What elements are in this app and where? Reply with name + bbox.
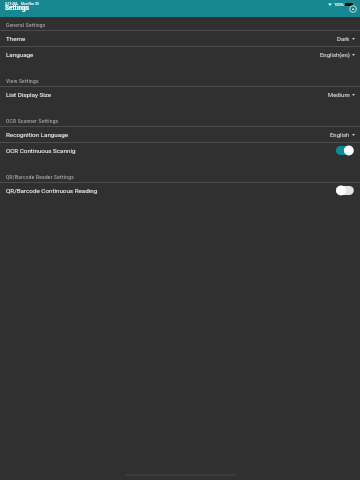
button[interactable]: Language: [0, 47, 360, 62]
button[interactable]: Recognition Language: [0, 127, 360, 142]
staticText: Recognition Language: [6, 131, 69, 138]
staticText: English: [330, 131, 350, 138]
button[interactable]: Accessibility overlay button: [349, 5, 357, 13]
staticText: English(en): [320, 51, 350, 58]
staticText: General Settings: [6, 23, 46, 29]
staticText: QR/Barcode Continuous Reading: [6, 187, 98, 194]
staticText: 3:13 AM: [5, 2, 18, 6]
staticText: View Settings: [6, 79, 39, 85]
staticText: Language: [6, 51, 34, 58]
button[interactable]: Switch on: [336, 145, 354, 156]
button[interactable]: QR/Barcode Continuous Reading: [0, 183, 360, 198]
staticText: Settings: [5, 4, 29, 12]
staticText: Medium: [328, 91, 350, 98]
staticText: Theme: [6, 35, 26, 42]
button[interactable]: OCR Continuous Scannig: [0, 143, 360, 158]
staticText: 100%: [334, 2, 344, 7]
staticText: QR/Barcode Reader Settings: [6, 175, 74, 181]
staticText: OCR Scanner Settings: [6, 119, 59, 125]
staticText: List Display Size: [6, 91, 52, 98]
button[interactable]: Theme: [0, 31, 360, 46]
staticText: OCR Continuous Scannig: [6, 147, 76, 154]
staticText: Mon Nov 20: [21, 2, 39, 6]
button[interactable]: Switch off: [336, 185, 354, 196]
button[interactable]: List Display Size: [0, 87, 360, 102]
staticText: Dark: [337, 35, 350, 42]
